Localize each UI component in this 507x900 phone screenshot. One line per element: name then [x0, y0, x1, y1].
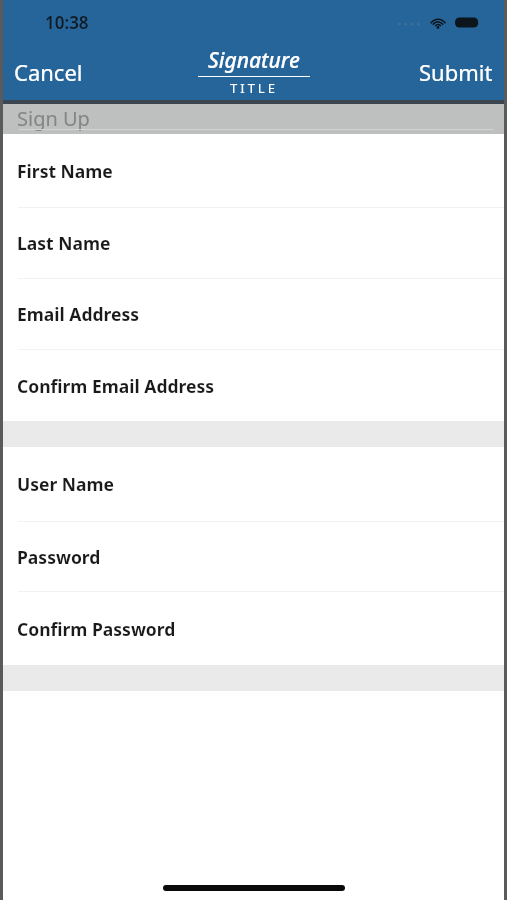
button[interactable]: First Name — [3, 134, 504, 207]
button[interactable]: Password — [3, 522, 504, 591]
staticText: Submit — [419, 57, 493, 87]
staticText: Password — [17, 545, 101, 569]
button[interactable]: Email Address — [3, 279, 504, 349]
button[interactable]: User Name — [3, 447, 504, 521]
staticText: Last Name — [17, 231, 111, 255]
button[interactable]: Last Name — [3, 208, 504, 278]
staticText: TITLE — [230, 79, 278, 97]
other: Signature Title logo — [198, 46, 310, 97]
button[interactable]: Confirm Email Address — [3, 350, 504, 421]
staticText: Email Address — [17, 302, 140, 326]
staticText: Confirm Email Address — [17, 374, 215, 398]
staticText: First Name — [17, 159, 113, 183]
staticText: 10:38 — [45, 11, 89, 34]
staticText: Confirm Password — [17, 617, 176, 641]
staticText: Sign Up — [17, 105, 90, 132]
staticText: Cancel — [14, 57, 83, 87]
staticText: Signature — [208, 46, 300, 75]
button[interactable]: Confirm Password — [3, 592, 504, 665]
staticText: User Name — [17, 472, 115, 496]
button[interactable]: Cancel — [14, 57, 83, 87]
button[interactable]: Submit — [419, 57, 493, 87]
